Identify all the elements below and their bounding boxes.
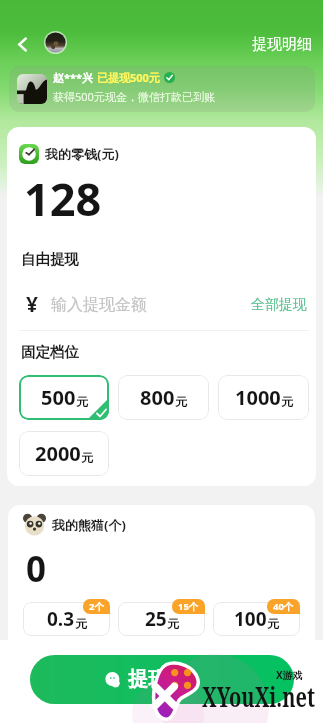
button[interactable]: 2000: [19, 431, 109, 476]
button[interactable]: 全部提现: [251, 296, 307, 314]
staticText: 已提现500元: [97, 70, 160, 85]
button[interactable]: Back: [7, 29, 37, 59]
staticText: 2个: [89, 600, 104, 613]
staticText: 我的熊猫(个): [52, 516, 126, 534]
button[interactable]: 800: [118, 375, 209, 420]
button[interactable]: 100: [213, 602, 300, 636]
staticText: 1000: [235, 384, 281, 411]
button[interactable]: 提现: [30, 655, 294, 704]
button[interactable]: 提现明细: [252, 35, 312, 54]
button[interactable]: 2个: [89, 600, 104, 613]
staticText: ¥: [26, 290, 39, 319]
staticText: X游戏: [276, 668, 303, 682]
staticText: 0.3: [47, 606, 75, 632]
staticText: 自由提现: [21, 250, 79, 268]
staticText: 获得500元现金，微信打款已到账: [53, 89, 215, 104]
staticText: 500: [41, 384, 76, 411]
staticText: 元: [81, 450, 93, 465]
staticText: 40个: [273, 600, 294, 613]
staticText: 0: [26, 545, 47, 593]
staticText: 固定档位: [21, 343, 79, 361]
staticText: 15个: [178, 600, 199, 613]
staticText: 2000: [35, 440, 81, 467]
staticText: 800: [140, 384, 175, 411]
staticText: 元: [267, 616, 279, 631]
button[interactable]: 25: [118, 602, 205, 636]
button[interactable]: Profile: [44, 31, 67, 54]
staticText: 提现: [128, 667, 168, 692]
staticText: 元: [75, 616, 87, 631]
staticText: 赵***兴: [53, 70, 93, 85]
button[interactable]: 0.3: [23, 602, 110, 636]
button[interactable]: 15个: [178, 600, 199, 613]
staticText: XYouXi.net: [202, 678, 315, 715]
staticText: 元: [175, 394, 187, 409]
staticText: 元: [76, 394, 88, 409]
staticText: 100: [234, 606, 267, 632]
staticText: 元: [167, 616, 179, 631]
staticText: 元: [281, 394, 293, 409]
staticText: 25: [145, 606, 167, 632]
staticText: 输入提现金额: [51, 295, 147, 315]
staticText: 我的零钱(元): [45, 145, 119, 163]
button[interactable]: 赵***兴: [9, 66, 315, 112]
button[interactable]: 1000: [218, 375, 309, 420]
staticText: 128: [24, 168, 102, 229]
button[interactable]: 500: [19, 375, 109, 420]
button[interactable]: 40个: [273, 600, 294, 613]
